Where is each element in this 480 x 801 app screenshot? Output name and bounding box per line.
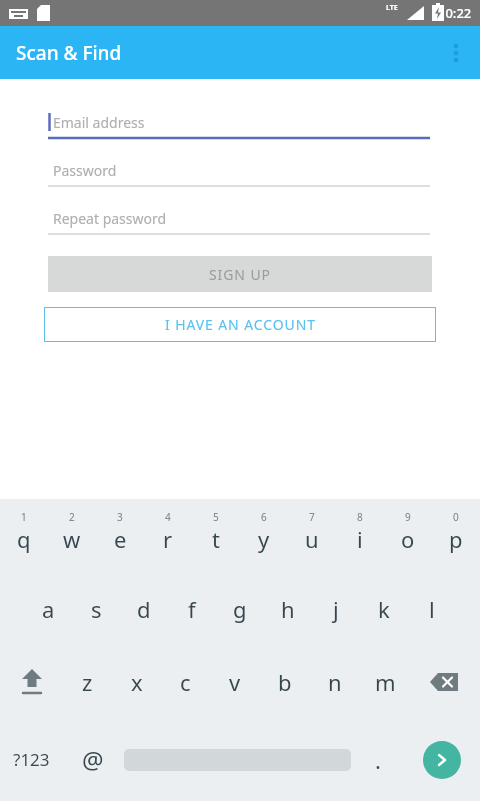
staticText: 4 — [165, 510, 171, 524]
button[interactable]: j — [312, 572, 360, 645]
staticText: LTE — [386, 3, 398, 13]
staticText: j — [333, 594, 339, 624]
staticText: 6 — [261, 510, 267, 524]
staticText: c — [180, 667, 191, 697]
staticText: i — [357, 524, 363, 554]
button[interactable]: 1 — [0, 499, 48, 572]
button[interactable]: h — [264, 572, 312, 645]
button[interactable]: SIGN UP — [48, 256, 432, 292]
staticText: 1 — [21, 510, 27, 524]
staticText: Repeat password — [53, 209, 167, 228]
button[interactable]: 9 — [384, 499, 432, 572]
staticText: g — [233, 594, 247, 624]
staticText: ?123 — [13, 748, 50, 771]
button[interactable]: 5 — [192, 499, 240, 572]
staticText: Scan & Find — [16, 40, 122, 66]
button[interactable]: 3 — [96, 499, 144, 572]
button[interactable]: Backspace — [410, 645, 480, 718]
button[interactable]: s — [72, 572, 120, 645]
staticText: p — [449, 524, 463, 554]
staticText: w — [63, 524, 81, 554]
staticText: Email address — [53, 113, 145, 132]
button[interactable]: Space — [123, 718, 352, 801]
button[interactable]: v — [210, 645, 260, 718]
button[interactable]: g — [216, 572, 264, 645]
button[interactable]: c — [161, 645, 210, 718]
staticText: u — [305, 524, 319, 554]
staticText: 2 — [69, 510, 75, 524]
staticText: Password — [53, 161, 117, 180]
staticText: @ — [82, 743, 104, 776]
staticText: l — [429, 594, 435, 624]
button[interactable]: Repeat password — [48, 204, 430, 235]
staticText: n — [328, 667, 342, 697]
staticText: . — [375, 745, 381, 775]
button[interactable]: b — [260, 645, 310, 718]
staticText: o — [401, 524, 415, 554]
button[interactable]: 4 — [144, 499, 192, 572]
button[interactable]: . — [352, 718, 404, 801]
staticText: k — [378, 594, 390, 624]
staticText: v — [229, 667, 241, 697]
button[interactable]: @ — [63, 718, 123, 801]
staticText: e — [114, 524, 127, 554]
staticText: q — [17, 524, 31, 554]
button[interactable]: a — [24, 572, 72, 645]
staticText: m — [375, 667, 396, 697]
staticText: a — [42, 594, 55, 624]
button[interactable]: f — [168, 572, 216, 645]
staticText: r — [163, 524, 173, 554]
button[interactable]: 6 — [240, 499, 288, 572]
staticText: s — [91, 594, 102, 624]
button[interactable]: 8 — [336, 499, 384, 572]
staticText: b — [278, 667, 292, 697]
staticText: 8 — [357, 510, 363, 524]
staticText: SIGN UP — [209, 265, 271, 284]
button[interactable]: n — [310, 645, 360, 718]
button[interactable]: d — [120, 572, 168, 645]
button[interactable]: 2 — [48, 499, 96, 572]
button[interactable]: m — [360, 645, 410, 718]
staticText: h — [281, 594, 295, 624]
button[interactable]: Email address — [48, 108, 430, 139]
staticText: d — [137, 594, 151, 624]
staticText: 0 — [453, 510, 459, 524]
button[interactable]: Password — [48, 156, 430, 187]
button[interactable]: I HAVE AN ACCOUNT — [44, 307, 436, 342]
staticText: 10:22 — [438, 4, 472, 22]
button[interactable]: l — [408, 572, 456, 645]
button[interactable]: k — [360, 572, 408, 645]
staticText: 7 — [309, 510, 315, 524]
button[interactable]: 0 — [432, 499, 480, 572]
button[interactable]: Enter — [404, 718, 480, 801]
staticText: I HAVE AN ACCOUNT — [165, 315, 316, 334]
button[interactable]: ?123 — [0, 718, 63, 801]
staticText: z — [82, 667, 93, 697]
staticText: 9 — [405, 510, 411, 524]
button[interactable]: More options — [432, 29, 480, 77]
staticText: 5 — [213, 510, 219, 524]
button[interactable]: 7 — [288, 499, 336, 572]
staticText: t — [212, 524, 220, 554]
staticText: y — [258, 524, 270, 554]
staticText: x — [131, 667, 143, 697]
staticText: 3 — [117, 510, 123, 524]
button[interactable]: z — [63, 645, 112, 718]
staticText: f — [188, 594, 196, 624]
button[interactable]: Shift — [0, 645, 63, 718]
button[interactable]: x — [112, 645, 161, 718]
